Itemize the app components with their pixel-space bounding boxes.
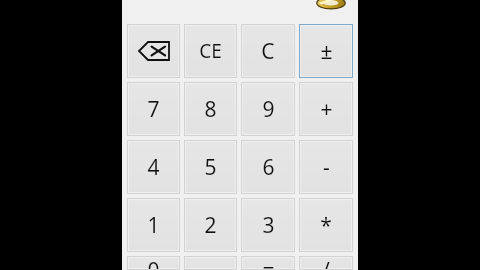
staticText: 0 [147, 256, 160, 270]
button[interactable]: 8 [184, 82, 237, 136]
button[interactable]: * [299, 198, 353, 252]
button[interactable]: - [299, 140, 353, 194]
button[interactable]: 4 [127, 140, 180, 194]
button[interactable]: 3 [241, 198, 295, 252]
staticText: 6 [262, 153, 275, 182]
staticText: . [208, 256, 214, 270]
staticText: = [262, 256, 275, 270]
staticText: 2 [204, 211, 217, 240]
staticText: / [322, 256, 330, 270]
button[interactable]: 2 [184, 198, 237, 252]
button[interactable]: + [299, 82, 353, 136]
staticText: 9 [262, 95, 275, 124]
staticText: 8 [204, 95, 217, 124]
button[interactable]: ± [299, 24, 353, 78]
button[interactable]: C [241, 24, 295, 78]
staticText: 1 [147, 211, 160, 240]
button[interactable]: = [241, 256, 295, 270]
button[interactable]: 5 [184, 140, 237, 194]
staticText: 5 [204, 153, 217, 182]
button[interactable]: . [184, 256, 237, 270]
staticText: * [320, 211, 332, 240]
button[interactable]: / [299, 256, 353, 270]
staticText: ± [320, 37, 333, 66]
staticText: 3 [262, 211, 275, 240]
staticText: + [320, 95, 333, 124]
button[interactable]: 1 [127, 198, 180, 252]
button[interactable]: 7 [127, 82, 180, 136]
staticText: C [261, 37, 275, 66]
button[interactable]: Backspace [127, 24, 180, 78]
button[interactable]: 6 [241, 140, 295, 194]
button[interactable]: 0 [127, 256, 180, 270]
staticText: - [323, 153, 330, 182]
button[interactable]: CE [184, 24, 237, 78]
staticText: 4 [147, 153, 160, 182]
staticText: 7 [147, 95, 160, 124]
button[interactable]: 9 [241, 82, 295, 136]
staticText: CE [199, 38, 222, 64]
